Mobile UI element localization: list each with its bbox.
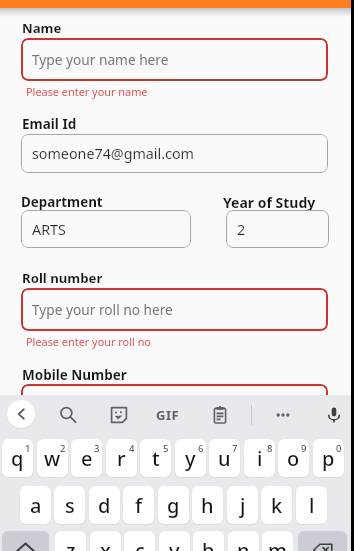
staticText: 8 — [267, 442, 273, 455]
button[interactable]: Shift — [2, 531, 49, 551]
staticText: s — [65, 492, 75, 519]
staticText: someone74@gmail.com — [32, 144, 194, 163]
staticText: Department — [21, 193, 103, 211]
staticText: Name — [22, 19, 62, 37]
button[interactable]: c — [124, 531, 155, 551]
button[interactable]: a — [20, 486, 51, 524]
staticText: r — [117, 445, 126, 472]
staticText: a — [30, 492, 42, 519]
staticText: GIF — [156, 406, 180, 424]
staticText: Mobile Number — [22, 366, 127, 384]
staticText: i — [257, 445, 263, 472]
button[interactable]: r — [106, 439, 137, 477]
staticText: 4 — [129, 442, 135, 455]
staticText: c — [135, 537, 145, 551]
button[interactable]: f — [123, 486, 154, 524]
staticText: k — [271, 492, 283, 519]
button[interactable]: p — [313, 439, 344, 477]
staticText: 2 — [60, 442, 66, 455]
staticText: Roll number — [22, 269, 103, 287]
button[interactable]: ARTS — [21, 210, 191, 248]
staticText: j — [240, 492, 246, 519]
staticText: f — [135, 492, 143, 519]
staticText: Please enter your roll no — [26, 334, 151, 349]
staticText: Year of Study — [223, 193, 316, 212]
staticText: ARTS — [32, 220, 66, 239]
button[interactable]: o — [278, 439, 309, 477]
staticText: g — [167, 492, 180, 519]
button[interactable]: t — [140, 439, 171, 477]
staticText: b — [202, 537, 215, 551]
button[interactable]: Backspace — [298, 531, 347, 551]
button[interactable]: j — [227, 486, 258, 524]
staticText: Please enter your name — [26, 84, 148, 99]
button[interactable] — [21, 384, 328, 427]
staticText: 2 — [237, 220, 246, 239]
staticText: t — [152, 445, 160, 472]
button[interactable]: w — [37, 439, 68, 477]
staticText: 5 — [163, 442, 169, 455]
button[interactable]: x — [90, 531, 121, 551]
staticText: 0 — [336, 442, 342, 455]
button[interactable]: Search — [54, 401, 81, 428]
button[interactable]: i — [244, 439, 275, 477]
button[interactable]: 2 — [226, 210, 329, 248]
button[interactable]: s — [54, 486, 85, 524]
staticText: p — [322, 445, 335, 472]
button[interactable]: v — [159, 531, 190, 551]
staticText: e — [81, 445, 93, 472]
button[interactable]: h — [192, 486, 223, 524]
staticText: w — [44, 445, 61, 472]
button[interactable]: k — [261, 486, 292, 524]
button[interactable]: u — [209, 439, 240, 477]
staticText: 1 — [25, 442, 31, 455]
button[interactable]: b — [193, 531, 224, 551]
staticText: n — [237, 537, 250, 551]
button[interactable]: Type your name here — [21, 38, 328, 81]
staticText: o — [287, 445, 300, 472]
staticText: 9 — [301, 442, 307, 455]
button[interactable]: Clipboard — [206, 401, 233, 428]
button[interactable]: Voice input — [320, 401, 347, 428]
staticText: z — [66, 537, 76, 551]
staticText: h — [201, 492, 214, 519]
button[interactable]: e — [71, 439, 102, 477]
staticText: x — [100, 537, 111, 551]
button[interactable]: someone74@gmail.com — [21, 134, 328, 173]
staticText: q — [11, 445, 24, 472]
button[interactable]: l — [296, 486, 327, 524]
staticText: 3 — [94, 442, 100, 455]
button[interactable]: GIF — [152, 401, 184, 428]
button[interactable]: Back — [7, 400, 35, 428]
staticText: m — [268, 537, 287, 551]
staticText: d — [98, 492, 111, 519]
staticText: Type your name here — [32, 50, 169, 69]
button[interactable]: g — [158, 486, 189, 524]
button[interactable]: m — [262, 531, 293, 551]
button[interactable]: More options — [269, 401, 296, 428]
staticText: Email Id — [22, 115, 77, 133]
button[interactable]: Stickers — [105, 401, 132, 428]
button[interactable]: y — [175, 439, 206, 477]
button[interactable]: n — [228, 531, 259, 551]
staticText: u — [218, 445, 231, 472]
staticText: v — [169, 537, 180, 551]
button[interactable]: z — [55, 531, 86, 551]
staticText: 7 — [232, 442, 238, 455]
staticText: 6 — [198, 442, 204, 455]
button[interactable]: d — [89, 486, 120, 524]
staticText: Type your roll no here — [32, 300, 173, 319]
staticText: y — [185, 445, 196, 472]
button[interactable]: q — [2, 439, 33, 477]
staticText: l — [309, 492, 315, 519]
button[interactable]: Type your roll no here — [21, 288, 328, 331]
